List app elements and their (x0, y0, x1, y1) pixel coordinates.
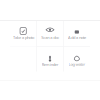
staticText: Log water (68, 61, 85, 67)
staticText: Reminder (41, 62, 58, 67)
staticText: Add a note (68, 35, 86, 40)
button[interactable]: Take a photo (10, 21, 36, 46)
staticText: Take a photo (13, 35, 34, 40)
staticText: Scan a doc (41, 35, 59, 40)
button[interactable]: Reminder (37, 46, 63, 71)
button[interactable]: Log water (64, 46, 90, 71)
button[interactable]: Scan a doc (37, 21, 63, 46)
button[interactable]: Add a note (64, 21, 90, 46)
